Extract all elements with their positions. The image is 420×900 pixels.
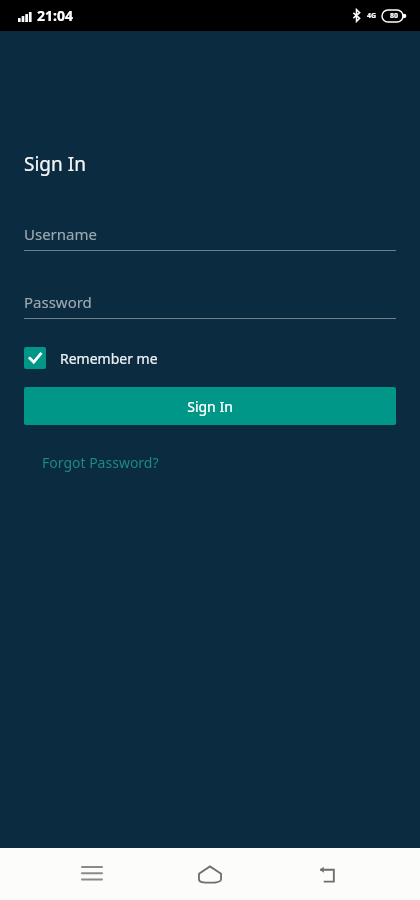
staticText: Forgot Password? [42,453,159,472]
button[interactable]: Remember me [24,345,166,371]
staticText: Remember me [60,349,158,368]
staticText: 21:04 [37,6,73,25]
button[interactable]: Username [24,223,396,245]
staticText: Username [24,224,97,244]
staticText: Sign In [24,151,86,177]
button[interactable]: Back [302,848,356,900]
staticText: Sign In [187,397,233,416]
button[interactable]: Recent apps [65,848,119,900]
button[interactable]: Sign In [24,387,396,425]
button[interactable]: Home [183,848,237,900]
button[interactable]: Password [24,291,396,313]
staticText: 4G [367,11,377,21]
button[interactable]: Forgot Password? [32,447,169,478]
staticText: Password [24,292,92,312]
staticText: 80 [390,11,399,21]
